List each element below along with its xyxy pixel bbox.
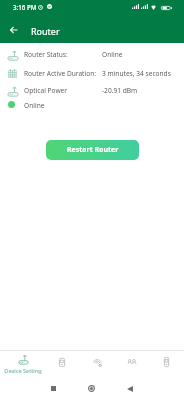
staticText: -20.91 dBm [102,86,138,95]
button[interactable]: Restart Router [46,140,139,160]
button[interactable]: Device Setting [4,351,42,376]
staticText: Router [31,25,60,37]
button[interactable]: Back [5,22,21,38]
staticText: Optical Power [24,86,68,95]
staticText: 3 minutes, 34 seconds [102,69,171,78]
staticText: Online [102,50,123,59]
button[interactable]: Tab [43,351,81,376]
staticText: Router Status: [24,50,68,59]
staticText: 3:16 PM [13,3,37,11]
button[interactable]: Tab [79,351,117,376]
button[interactable]: Home [88,385,95,392]
button[interactable]: Tab [113,351,151,376]
staticText: Device Setting [4,367,42,375]
staticText: Router Active Duration: [24,69,97,78]
staticText: Restart Router [67,145,119,155]
button[interactable]: Tab [147,351,184,376]
button[interactable]: Back [127,386,133,392]
staticText: Online [24,101,45,110]
